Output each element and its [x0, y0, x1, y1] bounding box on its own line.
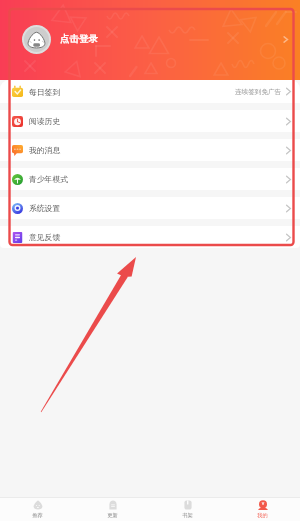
- button[interactable]: 更新: [75, 498, 150, 521]
- staticText: 我的消息: [29, 145, 61, 155]
- button[interactable]: 阅读历史: [0, 110, 300, 132]
- button[interactable]: 系统设置: [0, 197, 300, 219]
- button[interactable]: 书架: [150, 498, 225, 521]
- staticText: 我的: [257, 512, 268, 519]
- staticText: 系统设置: [29, 203, 61, 213]
- staticText: 阅读历史: [29, 116, 61, 126]
- button[interactable]: 青少年模式: [0, 168, 300, 190]
- button[interactable]: 点击登录: [0, 18, 300, 60]
- staticText: 更新: [107, 512, 118, 519]
- staticText: 每日签到: [29, 87, 61, 97]
- staticText: 青少年模式: [29, 174, 68, 184]
- button[interactable]: 推荐: [0, 498, 75, 521]
- staticText: 连续签到免广告: [235, 88, 282, 96]
- staticText: 点击登录: [60, 33, 98, 45]
- button[interactable]: 意见反馈: [0, 226, 300, 248]
- button[interactable]: 每日签到: [0, 80, 300, 103]
- button[interactable]: 我的消息: [0, 139, 300, 161]
- staticText: 书架: [182, 512, 193, 519]
- staticText: 推荐: [32, 512, 43, 519]
- button[interactable]: 我的: [225, 498, 300, 521]
- staticText: 意见反馈: [29, 232, 61, 242]
